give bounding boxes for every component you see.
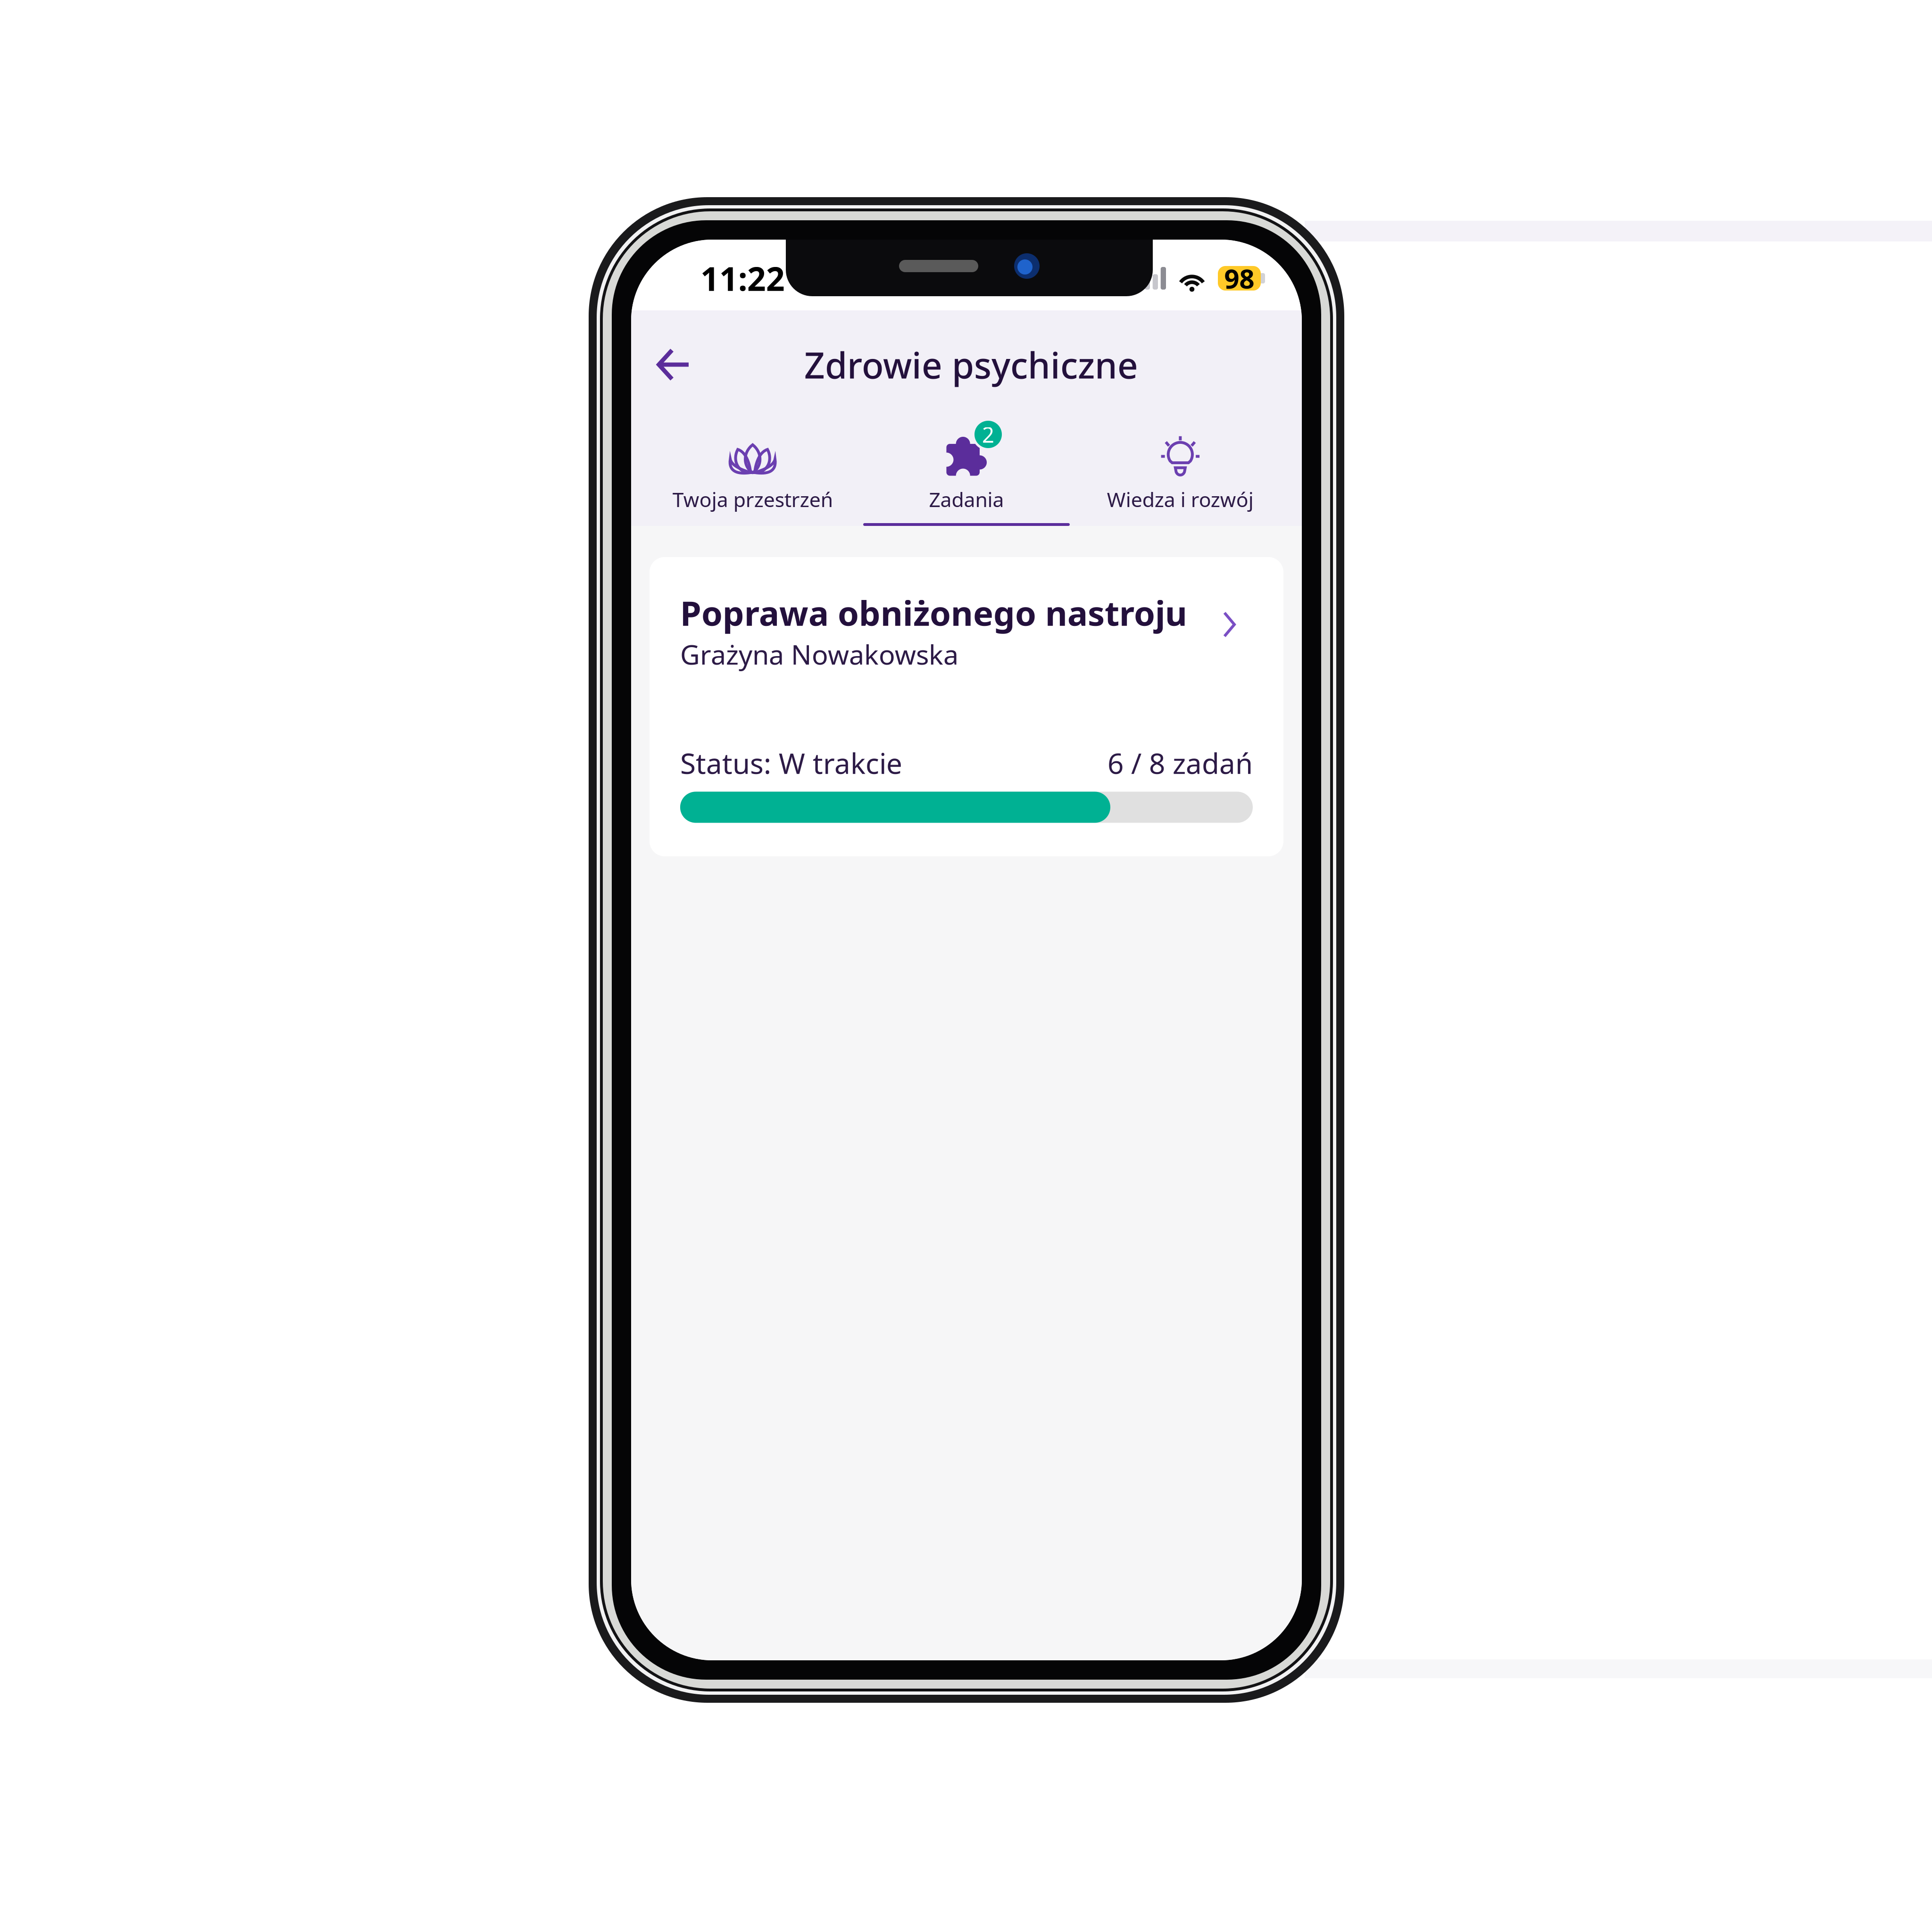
button[interactable]: 2 — [860, 419, 1073, 526]
staticText: 6 / 8 zadań — [1108, 744, 1253, 782]
staticText: Twoja przestrzeń — [672, 486, 833, 513]
button[interactable]: Wiedza i rozwój — [1073, 419, 1287, 526]
button[interactable]: Back — [641, 332, 707, 398]
button[interactable]: Poprawa obniżonego nastroju — [650, 557, 1283, 856]
staticText: Poprawa obniżonego nastroju — [680, 590, 1187, 635]
button[interactable]: Twoja przestrzeń — [646, 419, 860, 526]
staticText: 2 — [982, 420, 994, 449]
staticText: 11:22 — [700, 257, 785, 300]
staticText: Status: W trakcie — [680, 744, 902, 782]
staticText: Zdrowie psychiczne — [804, 341, 1138, 388]
staticText: Grażyna Nowakowska — [680, 636, 958, 672]
staticText: Zadania — [929, 486, 1004, 513]
staticText: 98 — [1224, 261, 1254, 296]
staticText: Wiedza i rozwój — [1107, 486, 1254, 513]
